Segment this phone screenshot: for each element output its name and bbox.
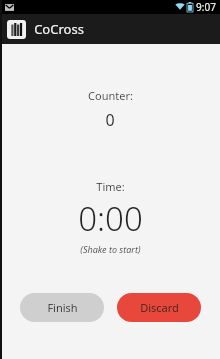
staticText: 9:07: [196, 0, 216, 14]
button[interactable]: Discard: [117, 293, 201, 322]
staticText: Finish: [47, 300, 78, 315]
staticText: Discard: [140, 300, 179, 315]
staticText: CoCross: [34, 20, 84, 38]
staticText: 0:00: [78, 196, 143, 241]
button[interactable]: Finish: [20, 293, 104, 322]
staticText: (Shake to start): [80, 243, 141, 255]
staticText: Time:: [96, 179, 125, 194]
staticText: Counter:: [88, 88, 133, 103]
staticText: 0: [105, 109, 115, 131]
